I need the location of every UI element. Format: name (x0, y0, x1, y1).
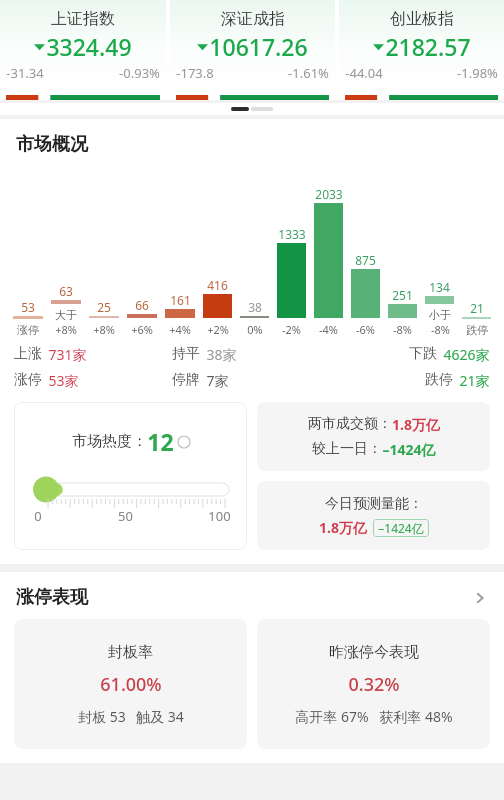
staticText: 大于 (55, 308, 77, 322)
staticText: 1.8万亿 (392, 415, 440, 434)
button[interactable]: 今日预测量能： (257, 481, 490, 550)
staticText: 触及 34 (136, 707, 184, 726)
staticText: 7家 (206, 371, 229, 390)
staticText: +6% (131, 322, 153, 337)
staticText: 深证成指 (221, 9, 285, 29)
staticText: 跌停 (425, 371, 453, 389)
staticText: -4% (319, 322, 338, 337)
button[interactable]: 深证成指 (170, 0, 335, 100)
staticText: 731家 (48, 345, 87, 364)
staticText: 市场概况 (16, 133, 88, 156)
staticText: 涨停 (14, 371, 42, 389)
staticText: 134 (429, 279, 450, 295)
staticText: 0 (34, 507, 42, 525)
staticText: 50 (118, 507, 133, 525)
staticText: -0.93% (119, 64, 160, 82)
staticText: 封板 53 (78, 707, 126, 726)
staticText: -8% (393, 322, 412, 337)
button[interactable]: 两市成交额： (257, 402, 490, 471)
staticText: -44.04 (345, 64, 383, 82)
staticText: 涨停表现 (16, 586, 88, 609)
staticText: –1424亿 (382, 440, 436, 459)
button[interactable]: 封板率 (14, 619, 247, 749)
staticText: 市场热度： (72, 432, 147, 451)
staticText: 53家 (48, 371, 79, 390)
staticText: +2% (207, 322, 229, 337)
staticText: 下跌 (409, 345, 437, 363)
staticText: 封板率 (108, 643, 153, 662)
staticText: +8% (93, 322, 115, 337)
staticText: 61.00% (100, 672, 162, 697)
staticText: -173.8 (176, 64, 214, 82)
staticText: 161 (170, 292, 191, 308)
button[interactable]: 涨停表现 (0, 586, 504, 609)
staticText: -6% (356, 322, 375, 337)
button[interactable]: 市场热度： (14, 402, 247, 550)
staticText: 38家 (206, 345, 237, 364)
staticText: 4626家 (443, 345, 490, 364)
staticText: 上证指数 (51, 9, 115, 29)
other: 查看更多 (472, 590, 488, 606)
staticText: 12 (147, 426, 174, 457)
staticText: 100 (208, 507, 231, 525)
staticText: +4% (169, 322, 191, 337)
staticText: 跌停 (466, 323, 488, 337)
staticText: +8% (55, 322, 77, 337)
staticText: 21 (470, 300, 484, 316)
staticText: 高开率 67% (295, 707, 369, 726)
staticText: 涨停 (17, 323, 39, 337)
staticText: 停牌 (172, 371, 200, 389)
staticText: 2033 (315, 186, 343, 202)
staticText: 两市成交额： (308, 415, 392, 433)
button[interactable]: 昨涨停今表现 (257, 619, 490, 749)
staticText: 创业板指 (390, 9, 454, 29)
staticText: -31.34 (6, 64, 44, 82)
staticText: 251 (392, 287, 413, 303)
staticText: –1424亿 (378, 520, 424, 536)
staticText: 0.32% (348, 672, 400, 697)
staticText: -2% (282, 322, 301, 337)
other: 说明 (178, 436, 190, 448)
staticText: 10617.26 (209, 31, 308, 62)
staticText: 持平 (172, 345, 200, 363)
staticText: 上涨 (14, 345, 42, 363)
staticText: 2182.57 (385, 31, 471, 62)
staticText: 1.8万亿 (319, 518, 367, 537)
staticText: 21家 (459, 371, 490, 390)
staticText: 今日预测量能： (325, 495, 423, 513)
staticText: 较上一日： (312, 440, 382, 458)
staticText: 获利率 48% (379, 707, 453, 726)
staticText: 3324.49 (46, 31, 132, 62)
staticText: 小于 (429, 308, 451, 322)
staticText: 63 (59, 283, 73, 299)
staticText: 66 (135, 297, 149, 313)
staticText: -1.98% (457, 64, 498, 82)
staticText: 0% (247, 322, 263, 337)
staticText: -1.61% (288, 64, 329, 82)
staticText: 416 (207, 277, 228, 293)
staticText: 38 (248, 299, 262, 315)
staticText: 1333 (278, 226, 306, 242)
staticText: 875 (355, 252, 376, 268)
staticText: -8% (431, 322, 450, 337)
staticText: 53 (21, 299, 35, 315)
staticText: 25 (97, 299, 111, 315)
staticText: 昨涨停今表现 (329, 643, 419, 662)
button[interactable]: 上证指数 (0, 0, 166, 100)
button[interactable]: 创业板指 (339, 0, 504, 100)
